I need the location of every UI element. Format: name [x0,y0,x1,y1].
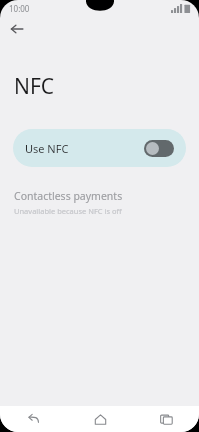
button[interactable]: Back [0,406,67,432]
button[interactable]: Recent apps [133,406,199,432]
staticText: NFC [14,72,55,101]
button[interactable]: Contactless payments [0,187,199,220]
button[interactable]: Back [4,16,30,42]
staticText: Use NFC [25,141,144,156]
button[interactable]: Use NFC [13,129,186,167]
button[interactable]: Use NFC toggle [144,140,174,157]
button[interactable]: Home [67,406,133,432]
staticText: Unavailable because NFC is off [14,206,122,216]
staticText: Contactless payments [14,189,123,203]
staticText: 10:00 [9,3,30,14]
